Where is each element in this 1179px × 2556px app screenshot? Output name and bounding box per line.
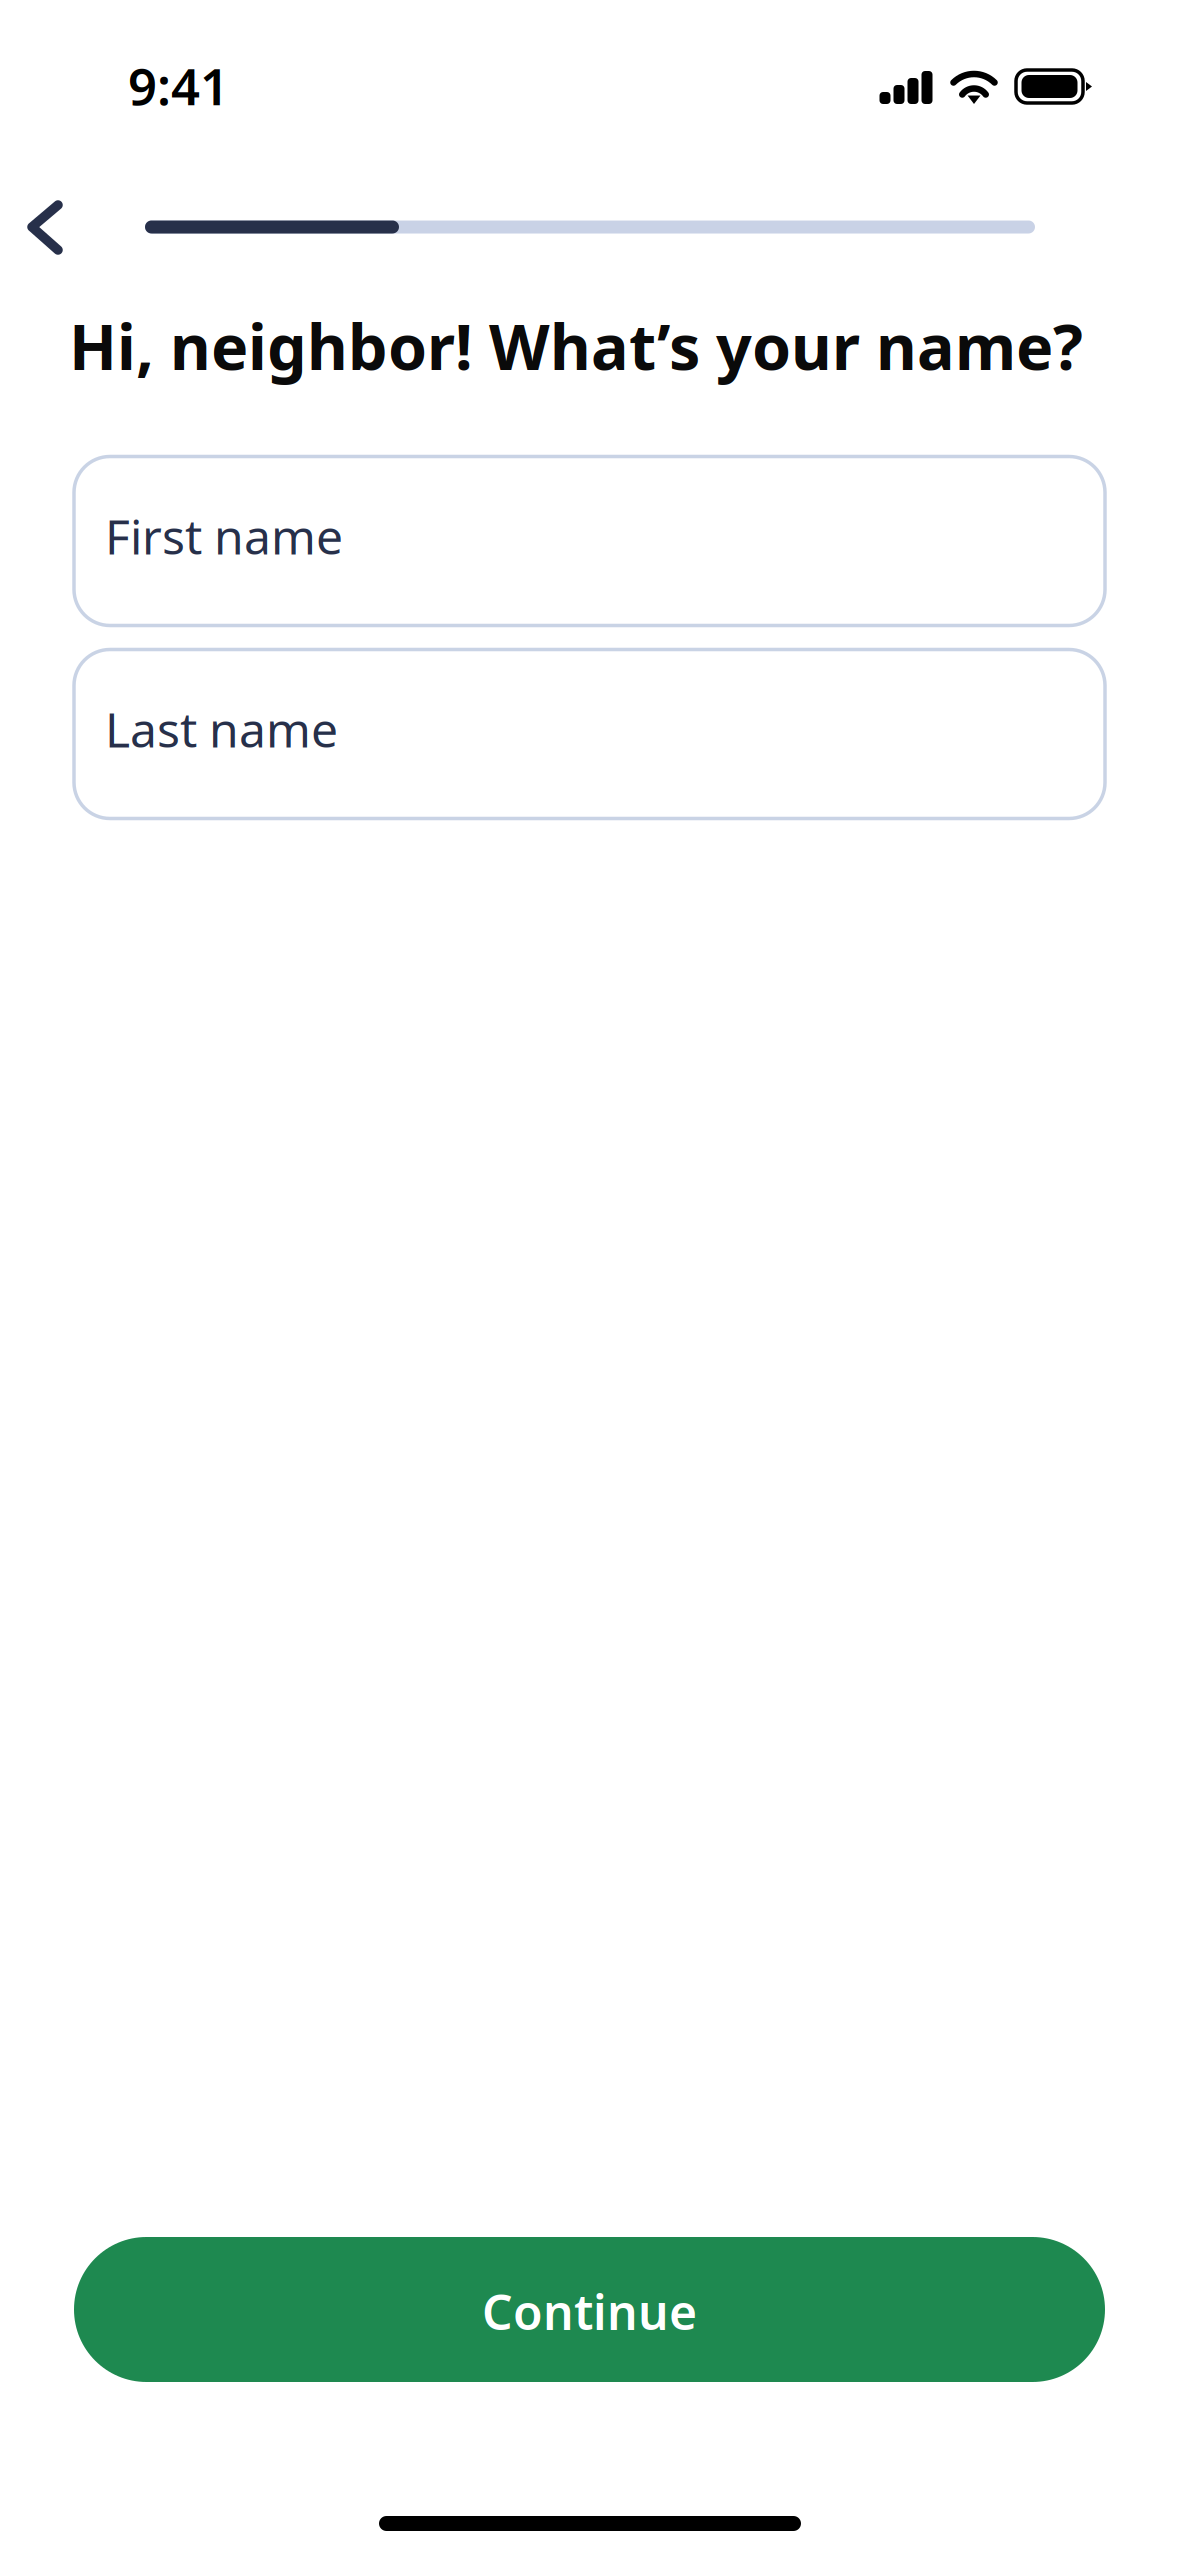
staticText: Last name xyxy=(105,697,338,761)
button[interactable]: Continue xyxy=(74,2237,1105,2382)
staticText: First name xyxy=(105,504,343,568)
button[interactable]: First name xyxy=(74,456,1105,625)
staticText: Continue xyxy=(482,2280,697,2343)
staticText: Hi, neighbor! What’s your name? xyxy=(69,304,1083,387)
staticText: 9:41 xyxy=(128,52,229,119)
button[interactable]: Back xyxy=(0,161,124,293)
button[interactable]: Last name xyxy=(74,649,1105,818)
